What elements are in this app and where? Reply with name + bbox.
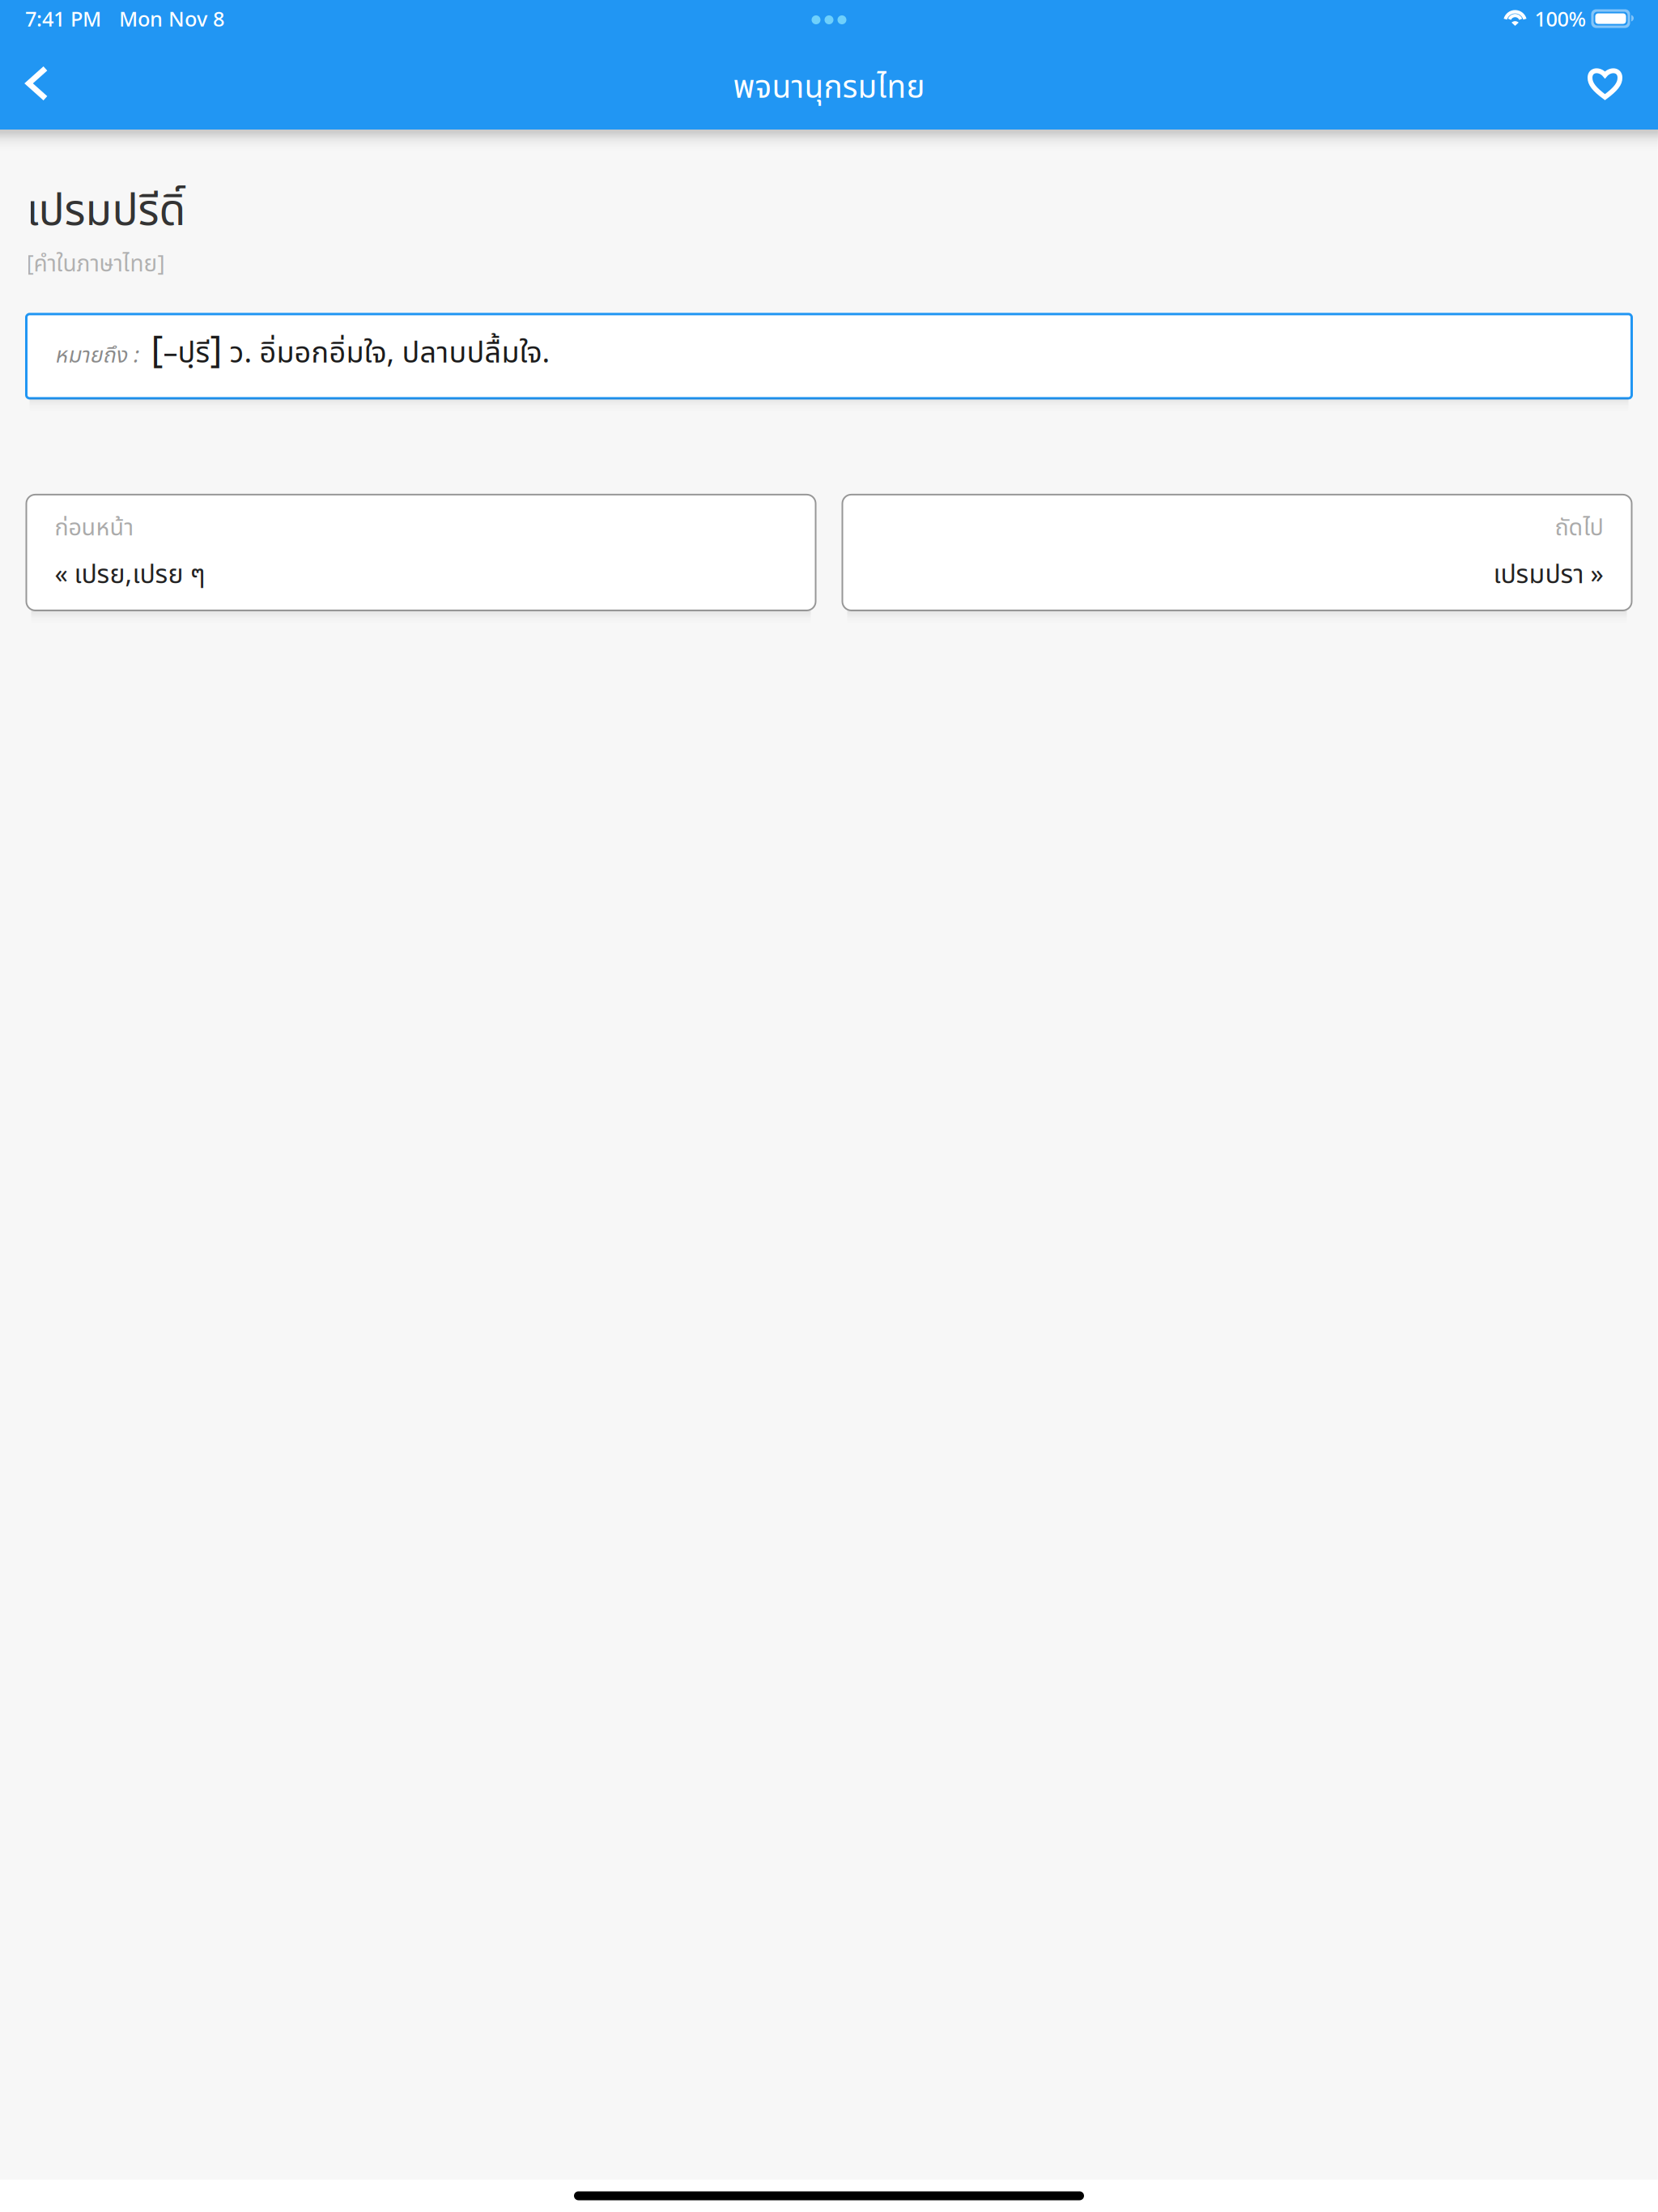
staticText: ก่อนหน้า	[55, 511, 134, 546]
staticText: « เปรย,เปรย ๆ	[55, 556, 205, 595]
staticText: เปรมปรีดิ์	[26, 179, 186, 244]
staticText: พจนานุกรมไทย	[733, 65, 925, 112]
button[interactable]: Back	[0, 67, 97, 100]
staticText: [คำในภาษาไทย]	[26, 247, 165, 282]
staticText: Mon Nov 8	[119, 5, 224, 32]
staticText: เปรมปรา »	[1493, 556, 1603, 595]
staticText: ถัดไป	[1555, 511, 1603, 546]
button[interactable]: ก่อนหน้า	[26, 495, 816, 610]
button[interactable]: Add to favourites	[1561, 67, 1658, 100]
staticText: [–ปฺรี] ว. อิ่มอกอิ่มใจ, ปลาบปลื้มใจ.	[151, 324, 550, 378]
staticText: 7:41 PM	[25, 5, 101, 32]
staticText: 100%	[1535, 5, 1586, 32]
button[interactable]: ถัดไป	[842, 495, 1632, 610]
staticText: หมายถึง :	[55, 340, 138, 372]
